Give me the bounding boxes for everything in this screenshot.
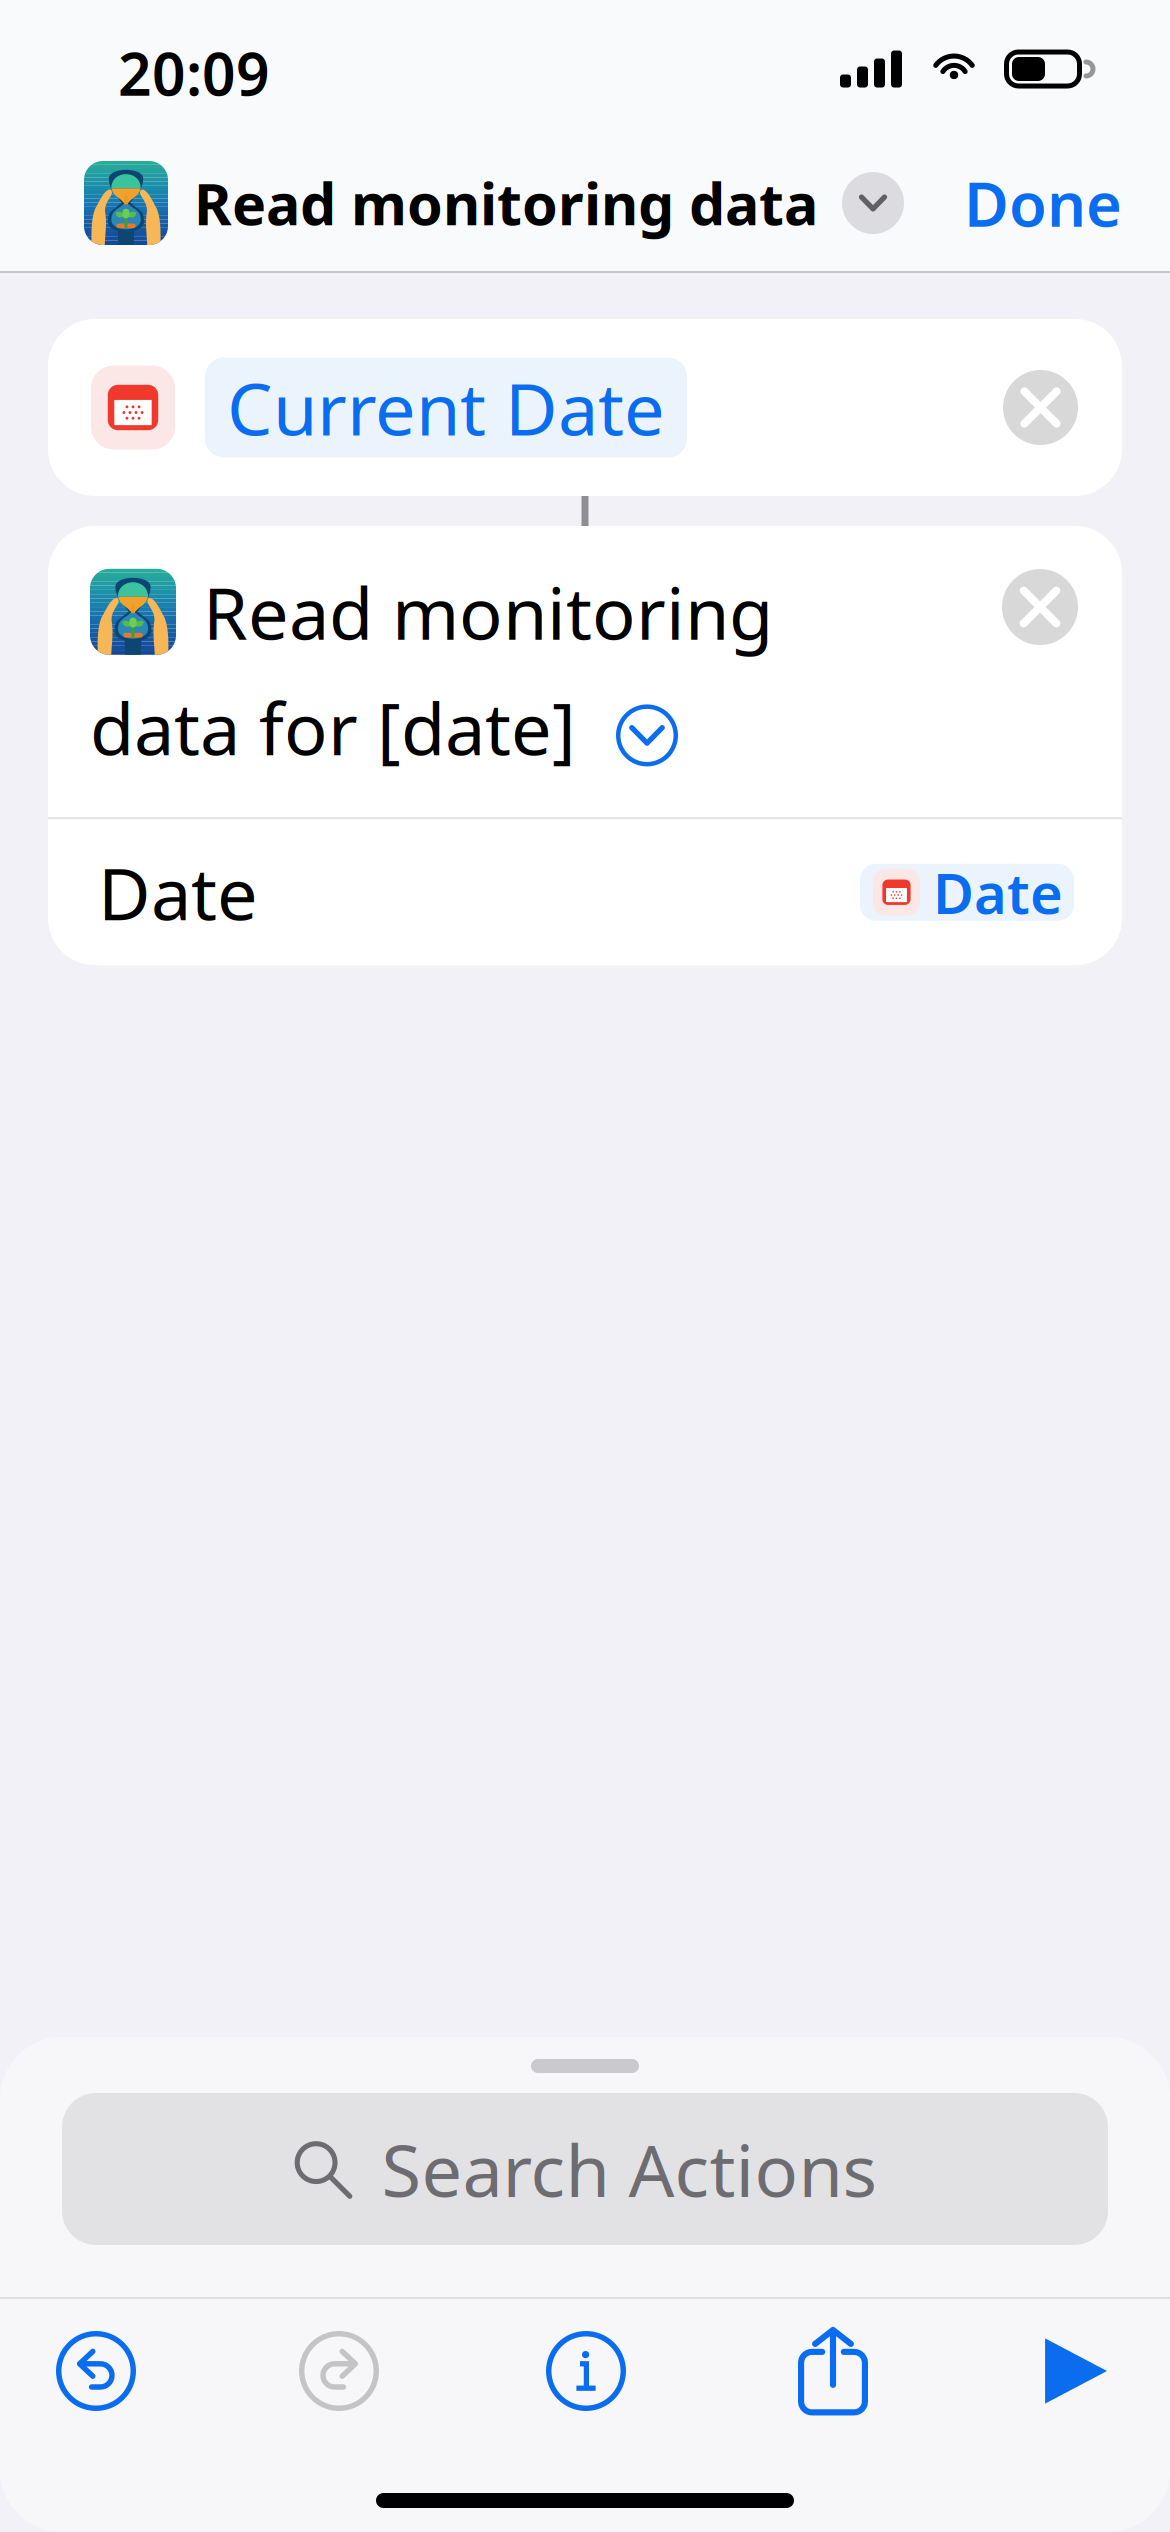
button[interactable]: Done bbox=[938, 144, 1148, 262]
button[interactable]: Search Actions bbox=[62, 2093, 1108, 2245]
staticText: 20:09 bbox=[118, 34, 270, 112]
staticText: Done bbox=[964, 162, 1122, 244]
button[interactable]: Read monitoring bbox=[48, 526, 1122, 817]
button[interactable]: Date bbox=[48, 819, 1122, 965]
button[interactable]: Share bbox=[686, 2306, 980, 2436]
button[interactable]: Shortcut options bbox=[818, 156, 928, 250]
staticText: Read monitoring bbox=[203, 564, 773, 660]
button[interactable]: Redo bbox=[192, 2306, 486, 2436]
button[interactable]: Remove action bbox=[1002, 569, 1078, 645]
staticText: Search Actions bbox=[381, 2121, 876, 2217]
button[interactable]: Shortcut details bbox=[486, 2306, 686, 2436]
button[interactable]: Run shortcut bbox=[980, 2306, 1170, 2436]
staticText: Current Date bbox=[227, 360, 665, 455]
staticText: Read monitoring data bbox=[194, 165, 818, 241]
button[interactable]: Current Date bbox=[48, 319, 1122, 496]
button[interactable]: Remove action bbox=[1003, 370, 1078, 445]
staticText: Date bbox=[933, 855, 1063, 929]
staticText: data for [date] bbox=[90, 680, 576, 775]
staticText: Date bbox=[98, 844, 258, 940]
button[interactable]: Undo bbox=[0, 2306, 192, 2436]
